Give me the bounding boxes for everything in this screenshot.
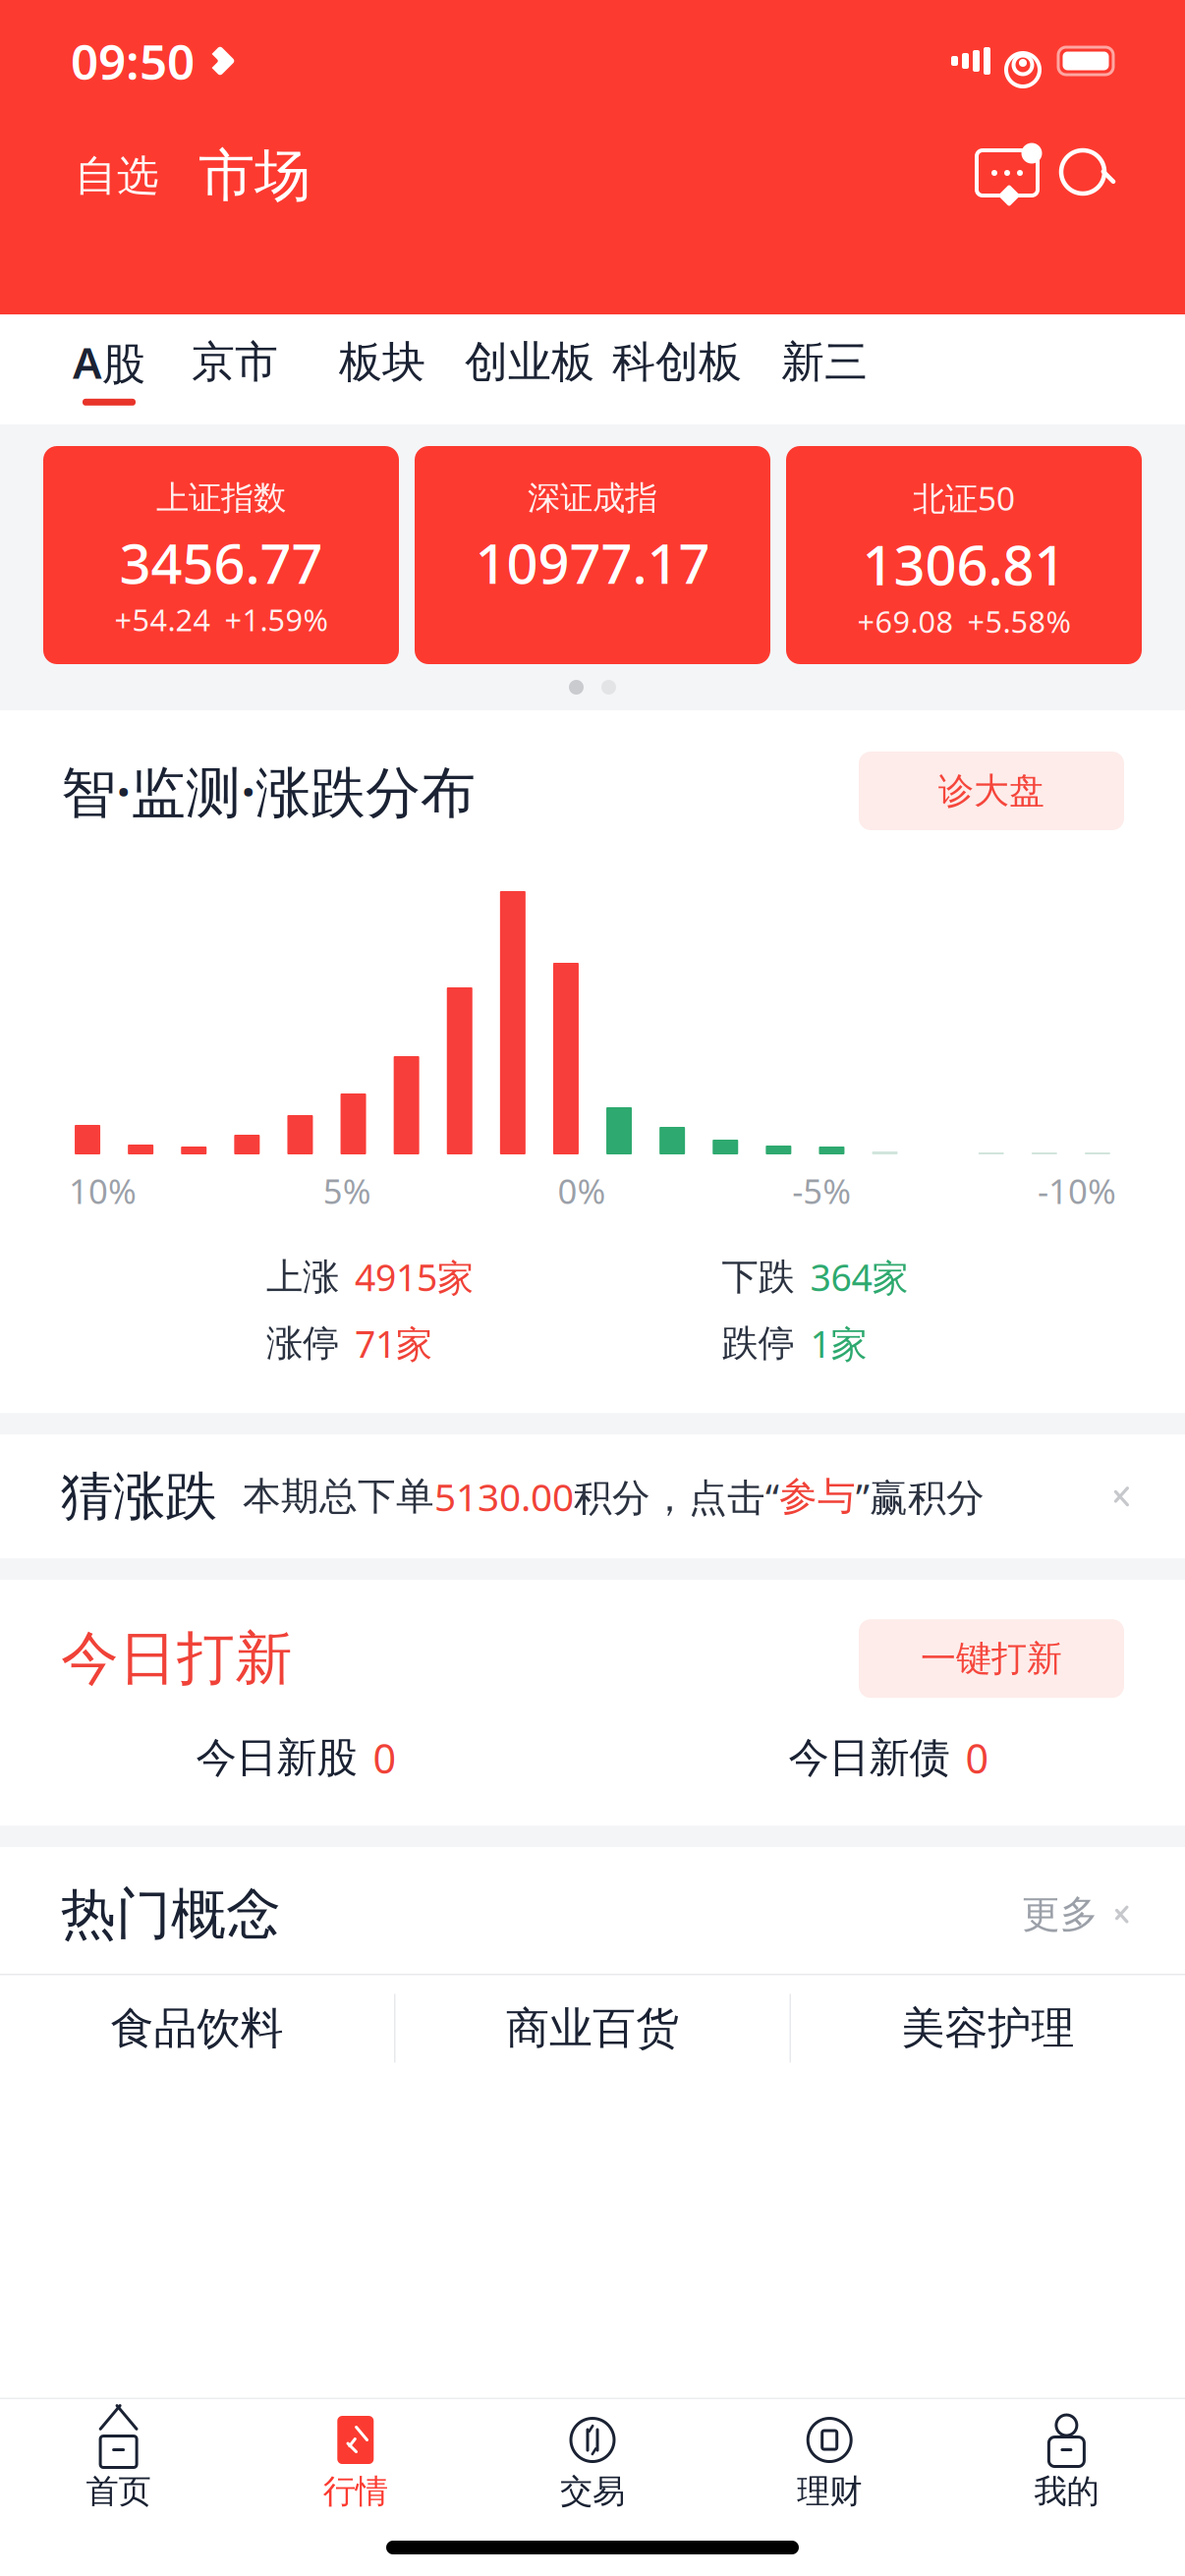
button[interactable]: 理财 bbox=[711, 2409, 948, 2517]
staticText: +69.08 bbox=[857, 601, 954, 641]
staticText: 1家 bbox=[810, 1319, 867, 1368]
button[interactable]: 深证成指 bbox=[415, 446, 770, 664]
staticText: 市场 bbox=[198, 141, 310, 210]
button[interactable]: 美容护理 bbox=[791, 1975, 1185, 2081]
staticText: 科创板 bbox=[612, 336, 742, 389]
button[interactable]: 诊大盘 bbox=[859, 752, 1124, 830]
staticText: 京市 bbox=[192, 336, 278, 389]
staticText: 跌停 bbox=[722, 1321, 794, 1366]
staticText: 上涨 bbox=[266, 1254, 339, 1300]
staticText: A股 bbox=[73, 333, 145, 391]
button[interactable]: 一键打新 bbox=[859, 1619, 1124, 1698]
button[interactable]: 新三 bbox=[751, 314, 898, 424]
staticText: 09:50 bbox=[71, 29, 195, 93]
button[interactable]: 搜索 bbox=[1049, 139, 1124, 213]
staticText: 首页 bbox=[86, 2471, 151, 2512]
staticText: 商业百货 bbox=[506, 2002, 679, 2055]
staticText: 涨停 bbox=[266, 1321, 339, 1366]
button[interactable]: 北证50 bbox=[786, 446, 1142, 664]
staticText: 0% bbox=[558, 1168, 606, 1213]
staticText: 今日打新 bbox=[61, 1623, 293, 1694]
staticText: 交易 bbox=[560, 2471, 625, 2512]
button[interactable]: 行情 bbox=[237, 2409, 474, 2517]
staticText: 0 bbox=[373, 1731, 396, 1785]
staticText: 更多 bbox=[1022, 1891, 1099, 1938]
staticText: 深证成指 bbox=[528, 478, 657, 518]
staticText: 一键打新 bbox=[921, 1637, 1062, 1680]
button[interactable]: 我的 bbox=[948, 2409, 1185, 2517]
button[interactable]: 交易 bbox=[474, 2409, 711, 2517]
staticText: -5% bbox=[792, 1168, 851, 1213]
staticText: 参与 bbox=[779, 1473, 856, 1520]
staticText: 我的 bbox=[1034, 2471, 1099, 2512]
staticText: +5.58% bbox=[967, 601, 1071, 641]
staticText: 美容护理 bbox=[902, 2002, 1074, 2055]
staticText: -10% bbox=[1038, 1168, 1116, 1213]
staticText: 创业板 bbox=[465, 336, 594, 389]
staticText: 食品饮料 bbox=[111, 2002, 283, 2055]
staticText: 智·监测·涨跌分布 bbox=[61, 754, 476, 827]
staticText: 北证50 bbox=[913, 476, 1015, 520]
button[interactable]: A股 bbox=[57, 314, 161, 424]
staticText: 71家 bbox=[355, 1319, 432, 1368]
staticText: 今日新债 bbox=[789, 1733, 950, 1783]
staticText: 理财 bbox=[797, 2471, 862, 2512]
staticText: 诊大盘 bbox=[938, 769, 1044, 813]
button[interactable]: 今日新债 bbox=[592, 1723, 1185, 1792]
button[interactable]: 首页 bbox=[0, 2409, 237, 2517]
staticText: 10% bbox=[69, 1168, 137, 1213]
button[interactable]: 更多 bbox=[1022, 1881, 1124, 1948]
button[interactable]: 食品饮料 bbox=[0, 1975, 394, 2081]
staticText: ”赢积分 bbox=[856, 1471, 985, 1522]
staticText: 1306.81 bbox=[862, 527, 1066, 601]
staticText: 364家 bbox=[810, 1253, 908, 1301]
staticText: 自选 bbox=[75, 150, 159, 202]
staticText: 热门概念 bbox=[61, 1881, 281, 1948]
staticText: 5130.00 bbox=[434, 1471, 574, 1522]
staticText: 10977.17 bbox=[475, 526, 710, 599]
staticText: 今日新股 bbox=[196, 1733, 357, 1783]
button[interactable]: 市场 bbox=[191, 135, 318, 216]
button[interactable]: 猜涨跌 bbox=[0, 1435, 1185, 1558]
button[interactable]: 创业板 bbox=[456, 314, 603, 424]
staticText: 本期总下单 bbox=[243, 1473, 434, 1520]
button[interactable]: 科创板 bbox=[603, 314, 751, 424]
staticText: 4915家 bbox=[355, 1253, 474, 1301]
staticText: 上证指数 bbox=[156, 478, 286, 518]
staticText: +54.24 bbox=[114, 600, 211, 640]
button[interactable]: 板块 bbox=[309, 314, 456, 424]
button[interactable]: 消息 bbox=[965, 139, 1049, 213]
staticText: +1.59% bbox=[225, 600, 328, 640]
staticText: 3456.77 bbox=[119, 526, 323, 599]
staticText: 下跌 bbox=[722, 1254, 794, 1300]
button[interactable]: 商业百货 bbox=[395, 1975, 790, 2081]
staticText: 5% bbox=[323, 1168, 371, 1213]
button[interactable]: 上证指数 bbox=[43, 446, 399, 664]
button[interactable]: 自选 bbox=[69, 140, 165, 211]
staticText: 0 bbox=[965, 1731, 989, 1785]
staticText: 猜涨跌 bbox=[61, 1464, 217, 1529]
staticText: 行情 bbox=[323, 2471, 388, 2512]
staticText: 新三 bbox=[781, 336, 868, 389]
staticText: 板块 bbox=[339, 336, 425, 389]
staticText: 积分，点击“ bbox=[574, 1471, 779, 1522]
button[interactable]: 今日新股 bbox=[0, 1723, 592, 1792]
button[interactable]: 京市 bbox=[161, 314, 309, 424]
